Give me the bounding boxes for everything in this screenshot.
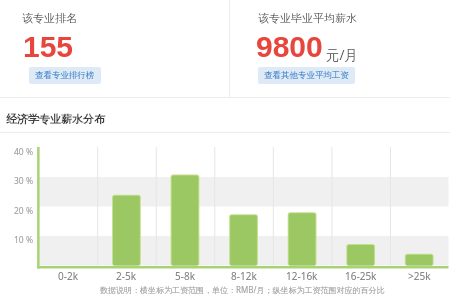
- button[interactable]: 查看专业排行榜: [29, 67, 101, 84]
- staticText: 该专业排名: [22, 11, 77, 25]
- staticText: 经济学专业薪水分布: [6, 112, 105, 126]
- staticText: 16-25k: [345, 269, 377, 283]
- staticText: 8-12k: [231, 269, 257, 283]
- staticText: 查看专业排行榜: [35, 70, 95, 81]
- staticText: 元/月: [326, 46, 359, 64]
- staticText: 30 %: [14, 175, 33, 187]
- staticText: 20 %: [14, 205, 33, 217]
- staticText: 155: [23, 30, 74, 64]
- staticText: 9800: [256, 30, 323, 64]
- staticText: 10 %: [14, 234, 33, 246]
- staticText: 5-8k: [175, 269, 195, 283]
- staticText: 12-16k: [286, 269, 318, 283]
- staticText: 查看其他专业平均工资: [264, 70, 349, 81]
- button[interactable]: 查看其他专业平均工资: [258, 67, 355, 84]
- staticText: 数据说明：横坐标为工资范围，单位：RMB/月；纵坐标为工资范围对应的百分比: [100, 284, 385, 295]
- staticText: 40 %: [14, 146, 33, 158]
- staticText: 0-2k: [58, 269, 78, 283]
- staticText: 该专业毕业平均薪水: [258, 11, 357, 25]
- staticText: 2-5k: [116, 269, 136, 283]
- staticText: >25k: [408, 269, 431, 283]
